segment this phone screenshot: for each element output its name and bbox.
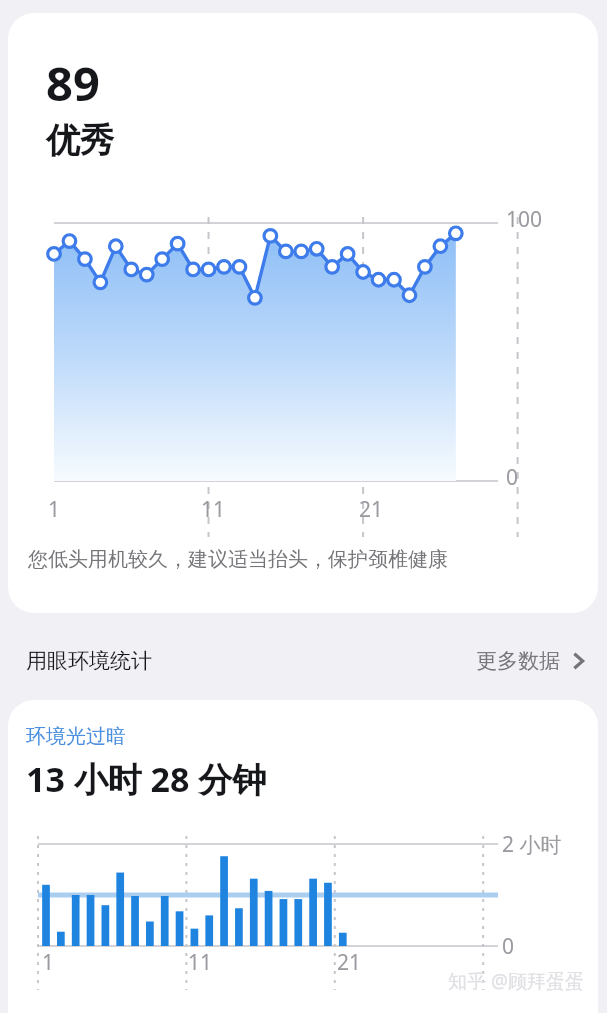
other: 更多数据 [572,649,585,673]
staticText: 100 [506,205,543,234]
staticText: 环境光过暗 [26,724,126,749]
staticText: 更多数据 [476,648,560,674]
staticText: 21 [359,495,384,524]
staticText: 2 小时 [502,830,562,859]
staticText: 0 [506,463,519,492]
staticText: 13 小时 28 分钟 [26,756,267,802]
staticText: 优秀 [46,119,114,162]
staticText: 89 [46,51,100,115]
staticText: 1 [48,495,61,524]
button[interactable]: 环境光过暗 [8,700,598,1013]
staticText: 0 [502,932,515,961]
staticText: 11 [201,495,226,524]
staticText: 1 [42,948,55,977]
staticText: 知乎 @顾拜蛋蛋 [448,968,585,994]
staticText: 您低头用机较久，建议适当抬头，保护颈椎健康 [28,547,448,572]
button[interactable]: 89 [8,13,598,613]
staticText: 21 [337,948,362,977]
staticText: 用眼环境统计 [26,648,152,674]
staticText: 11 [188,948,213,977]
button[interactable]: 用眼环境统计 [0,628,607,694]
